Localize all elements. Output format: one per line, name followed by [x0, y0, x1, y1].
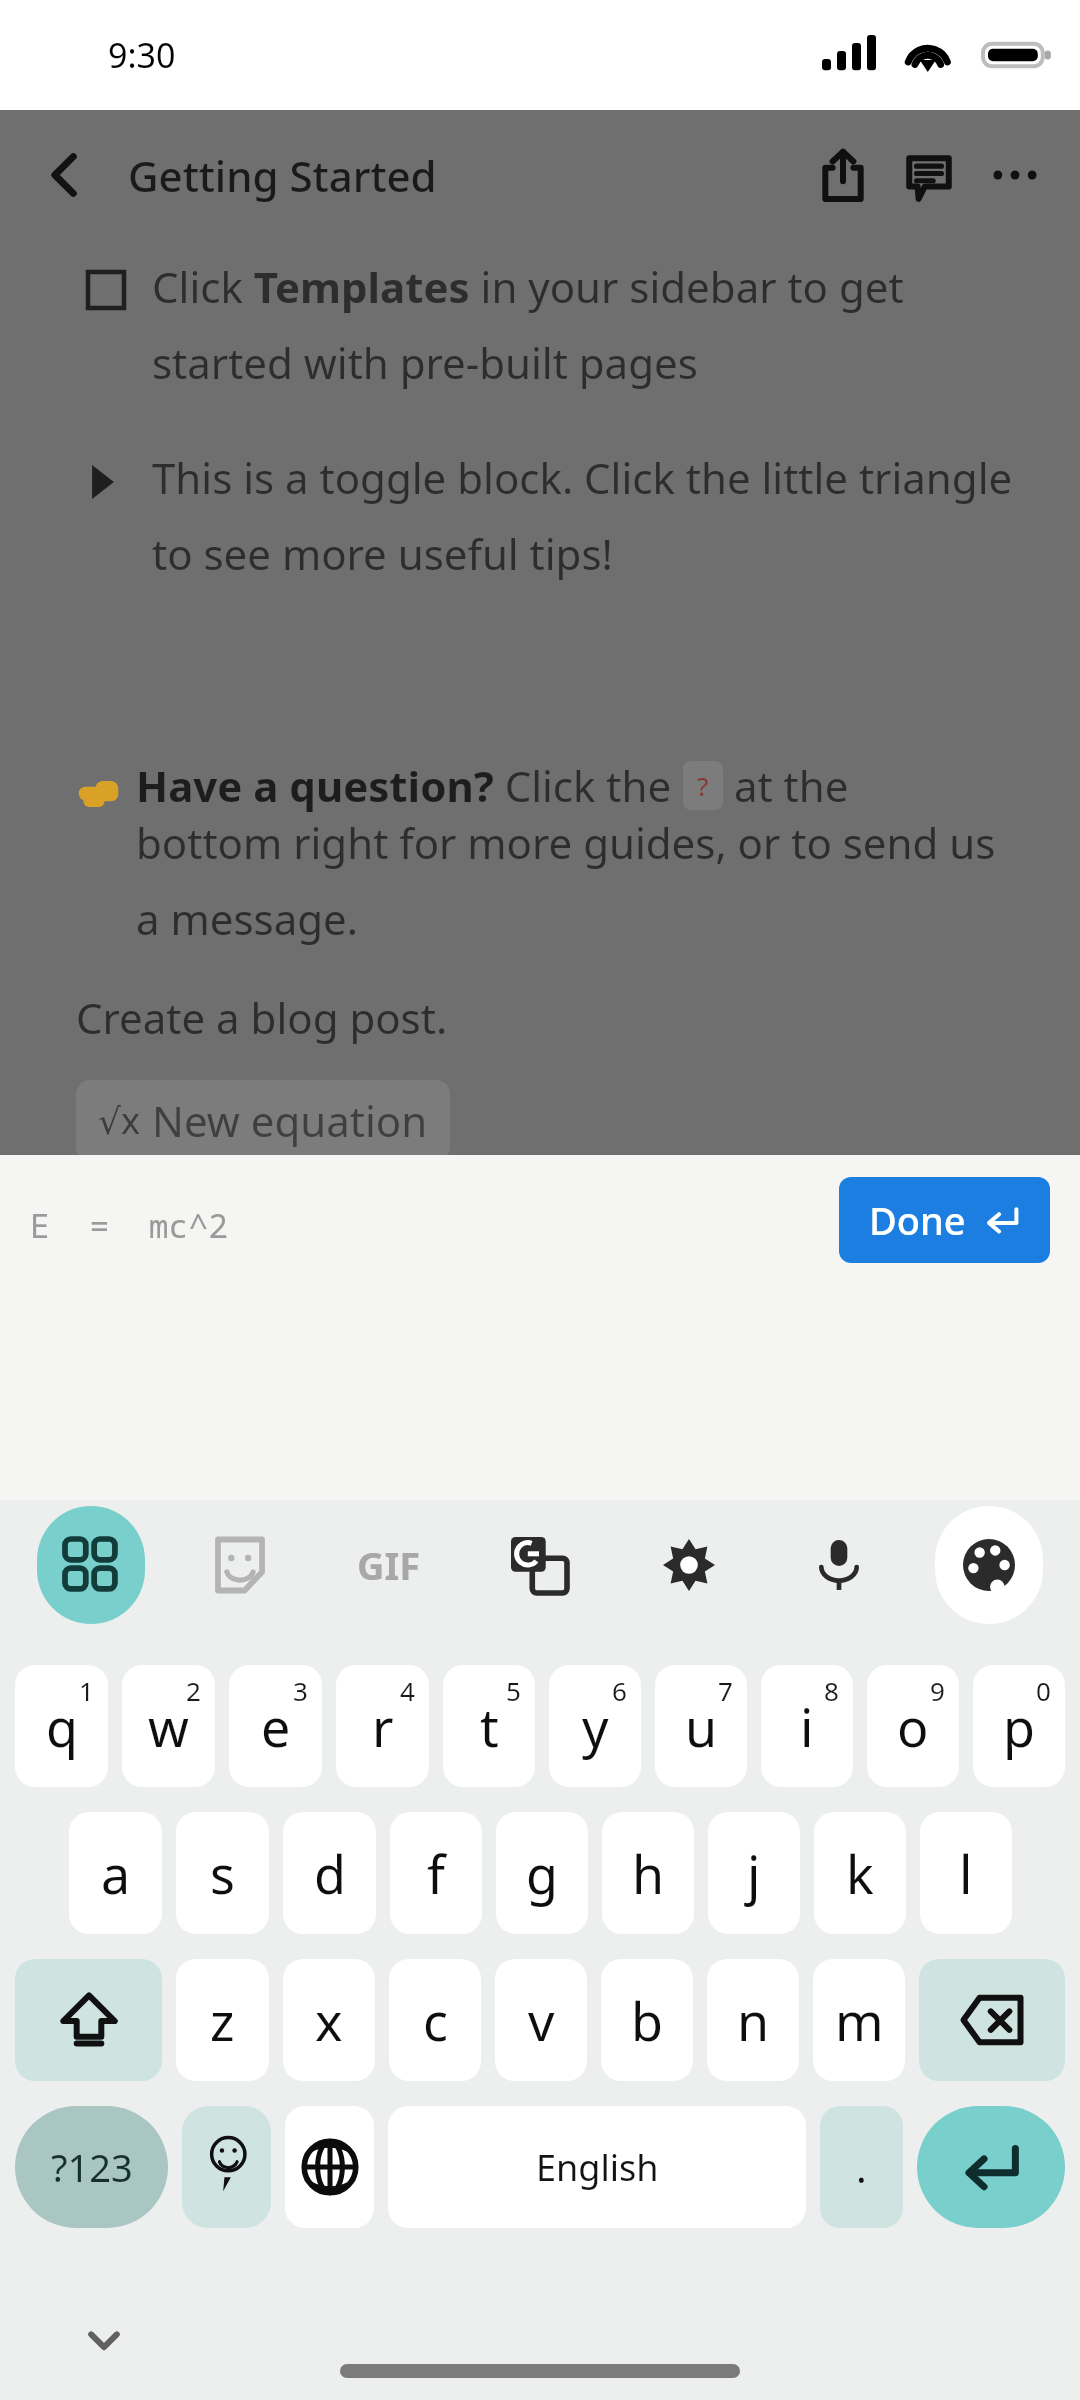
button[interactable]: k — [814, 1812, 906, 1934]
button[interactable]: Stickers — [165, 1504, 314, 1626]
staticText: Click Templates in your sidebar to get s… — [152, 258, 1020, 391]
staticText: ? — [697, 768, 709, 803]
staticText: c — [423, 1985, 448, 2056]
button[interactable]: Shift — [15, 1959, 162, 2081]
button[interactable]: g — [496, 1812, 588, 1934]
staticText: bottom right for more guides, or to send… — [136, 814, 1022, 947]
staticText: h — [632, 1838, 665, 1909]
staticText: v — [528, 1985, 555, 2056]
staticText: 2 — [186, 1673, 201, 1708]
button[interactable]: Getting Started — [128, 147, 437, 204]
staticText: 0 — [1036, 1673, 1051, 1708]
staticText: g — [526, 1838, 558, 1909]
staticText: a — [101, 1838, 131, 1909]
button[interactable]: l — [920, 1812, 1012, 1934]
button[interactable]: Translate — [464, 1504, 614, 1626]
staticText: at the — [723, 757, 849, 814]
button[interactable]: z — [176, 1959, 269, 2081]
staticText: . — [856, 2140, 867, 2194]
button[interactable]: d — [283, 1812, 376, 1934]
staticText: This is a toggle block. Click the little… — [152, 449, 1020, 582]
staticText: z — [210, 1985, 235, 2056]
button[interactable]: Keyboard modes — [16, 1504, 165, 1626]
button[interactable]: Themes — [914, 1504, 1064, 1626]
button[interactable]: Click Templates in your sidebar to get s… — [86, 258, 1020, 391]
button[interactable]: c — [389, 1959, 481, 2081]
button[interactable]: More options — [972, 132, 1058, 218]
staticText: E = mc^2 — [30, 1203, 229, 1248]
button[interactable]: i — [761, 1665, 853, 1787]
button[interactable]: Enter — [917, 2106, 1065, 2228]
button[interactable]: h — [602, 1812, 694, 1934]
button[interactable]: Voice input — [764, 1504, 914, 1626]
button[interactable]: t — [443, 1665, 535, 1787]
button[interactable]: Create a blog post. — [76, 989, 448, 1046]
button[interactable]: p — [973, 1665, 1065, 1787]
staticText: Have a question? Click the — [136, 757, 683, 814]
button[interactable]: GIF — [314, 1504, 464, 1626]
button[interactable]: f — [390, 1812, 482, 1934]
staticText: 6 — [612, 1673, 627, 1708]
staticText: 9 — [930, 1673, 945, 1708]
staticText: x — [315, 1985, 343, 2056]
button[interactable]: √x — [76, 1080, 450, 1161]
staticText: k — [846, 1838, 874, 1909]
button[interactable]: e — [229, 1665, 322, 1787]
staticText: l — [959, 1838, 973, 1909]
staticText: English — [536, 2143, 659, 2192]
staticText: 5 — [506, 1673, 521, 1708]
staticText: ?123 — [51, 2141, 133, 2193]
staticText: p — [1003, 1691, 1035, 1762]
button[interactable]: a — [69, 1812, 162, 1934]
button[interactable]: Done — [839, 1177, 1050, 1263]
staticText: r — [372, 1691, 394, 1762]
button[interactable]: s — [176, 1812, 269, 1934]
staticText: 9:30 — [108, 32, 176, 78]
button[interactable]: j — [708, 1812, 800, 1934]
button[interactable]: Hide keyboard — [78, 2314, 130, 2366]
staticText: w — [148, 1691, 189, 1762]
button[interactable]: r — [336, 1665, 429, 1787]
staticText: n — [737, 1985, 770, 2056]
staticText: 4 — [400, 1673, 415, 1708]
staticText: 8 — [824, 1673, 839, 1708]
button[interactable]: Have a question? Click the — [76, 757, 1022, 947]
staticText: s — [210, 1838, 235, 1909]
button[interactable]: . — [820, 2106, 903, 2228]
button[interactable]: v — [495, 1959, 587, 2081]
button[interactable]: ? — [697, 768, 709, 803]
button[interactable]: n — [707, 1959, 799, 2081]
staticText: 7 — [718, 1673, 733, 1708]
staticText: 3 — [293, 1673, 308, 1708]
staticText: √x — [98, 1096, 140, 1145]
button[interactable]: x — [283, 1959, 375, 2081]
button[interactable]: q — [15, 1665, 108, 1787]
button[interactable]: b — [601, 1959, 693, 2081]
staticText: GIF — [357, 1539, 421, 1591]
staticText: q — [46, 1691, 78, 1762]
staticText: t — [480, 1691, 499, 1762]
staticText: New equation — [152, 1092, 428, 1149]
button[interactable]: Change language — [285, 2106, 374, 2228]
button[interactable]: m — [813, 1959, 905, 2081]
button[interactable]: Backspace — [919, 1959, 1065, 2081]
button[interactable]: This is a toggle block. Click the little… — [86, 449, 1020, 582]
staticText: e — [261, 1691, 291, 1762]
staticText: f — [427, 1838, 445, 1909]
button[interactable]: Settings — [614, 1504, 764, 1626]
staticText: d — [314, 1838, 346, 1909]
button[interactable]: Back — [28, 138, 102, 212]
button[interactable]: y — [549, 1665, 641, 1787]
staticText: Done — [869, 1194, 966, 1246]
staticText: i — [800, 1691, 814, 1762]
button[interactable]: u — [655, 1665, 747, 1787]
staticText: b — [631, 1985, 663, 2056]
button[interactable]: w — [122, 1665, 215, 1787]
button[interactable]: Emoji — [182, 2106, 271, 2228]
button[interactable]: English — [388, 2106, 806, 2228]
staticText: y — [582, 1691, 609, 1762]
button[interactable]: ?123 — [15, 2106, 168, 2228]
button[interactable]: Share — [800, 132, 886, 218]
button[interactable]: Comments — [886, 132, 972, 218]
button[interactable]: o — [867, 1665, 959, 1787]
